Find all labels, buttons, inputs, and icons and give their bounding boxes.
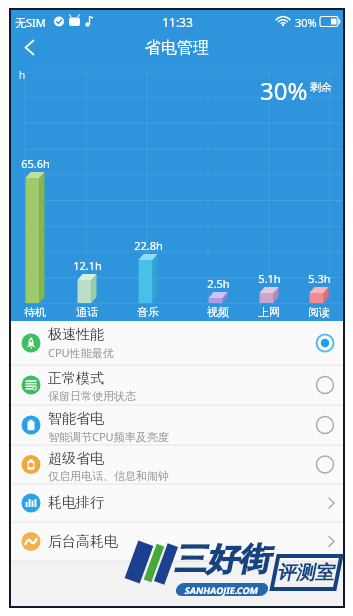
staticText: 极速性能 <box>48 326 104 344</box>
staticText: 30% <box>260 74 308 107</box>
staticText: 仅启用电话、信息和闹钟 <box>48 469 169 483</box>
staticText: 上网 <box>258 305 280 319</box>
staticText: 30% <box>295 15 317 30</box>
staticText: 待机 <box>24 305 46 319</box>
button[interactable] <box>11 33 343 62</box>
button[interactable]: 正常模式 <box>11 365 343 405</box>
button[interactable]: 耗电排行 <box>11 484 343 522</box>
staticText: 2.5h <box>207 276 230 291</box>
staticText: 阅读 <box>308 305 330 319</box>
staticText: 5.1h <box>258 271 281 286</box>
button[interactable]: 智能省电 <box>11 405 343 445</box>
staticText: 智能调节CPU频率及亮度 <box>48 429 169 444</box>
staticText: 65.6h <box>21 156 50 171</box>
staticText: CPU性能最优 <box>48 345 114 360</box>
staticText: 通话 <box>76 305 98 319</box>
staticText: 剩余 <box>310 80 332 94</box>
staticText: 保留日常使用状态 <box>48 389 136 403</box>
staticText: 22.8h <box>134 238 163 253</box>
button[interactable]: 超级省电 <box>11 445 343 484</box>
staticText: 后台高耗电 <box>48 533 118 551</box>
button[interactable]: 极速性能 <box>11 321 343 365</box>
staticText: 智能省电 <box>48 410 104 428</box>
staticText: 无SIM <box>15 15 46 30</box>
staticText: 耗电排行 <box>48 494 104 512</box>
staticText: 正常模式 <box>48 370 104 388</box>
staticText: 12.1h <box>73 258 102 273</box>
staticText: 11:33 <box>162 14 193 30</box>
staticText: 省电管理 <box>145 38 209 58</box>
staticText: 视频 <box>207 305 229 319</box>
staticText: 超级省电 <box>48 450 104 468</box>
staticText: 5.3h <box>308 271 331 286</box>
staticText: 音乐 <box>137 305 159 319</box>
button[interactable]: 后台高耗电 <box>11 522 343 561</box>
staticText: h <box>19 68 26 82</box>
